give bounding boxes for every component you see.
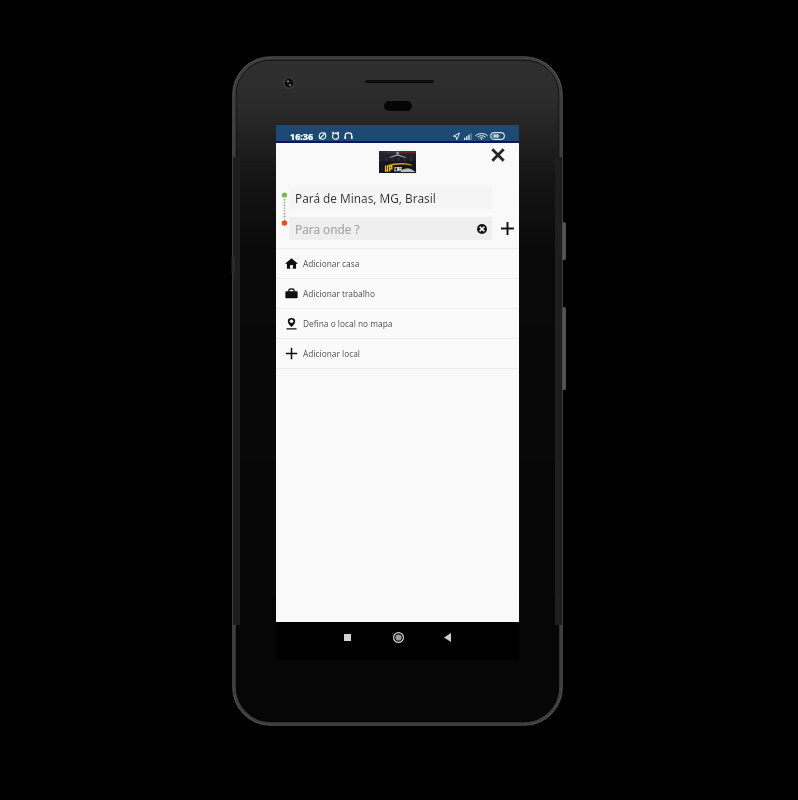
button[interactable]: Defina o local no mapa — [276, 309, 519, 338]
staticText: Para onde ? — [295, 221, 360, 237]
button[interactable]: Adicionar local — [276, 339, 519, 368]
button[interactable]: Voltar — [434, 624, 460, 650]
button[interactable]: Adicionar casa — [276, 249, 519, 278]
staticText: Pará de Minas, MG, Brasil — [295, 190, 436, 206]
button[interactable]: Pará de Minas, MG, Brasil — [289, 186, 492, 209]
button[interactable]: Início — [385, 624, 411, 650]
button[interactable]: Adicionar trabalho — [276, 279, 519, 308]
button[interactable]: Para onde ? — [289, 217, 492, 240]
staticText: Adicionar casa — [303, 258, 360, 269]
button[interactable]: Fechar — [485, 142, 511, 168]
staticText: Defina o local no mapa — [303, 318, 393, 329]
button[interactable]: Recentes — [334, 624, 360, 650]
button[interactable]: Limpar — [474, 221, 490, 237]
staticText: 16:36 — [290, 130, 314, 142]
staticText: Adicionar local — [303, 348, 360, 359]
staticText: Adicionar trabalho — [303, 288, 376, 299]
button[interactable]: Adicionar parada — [494, 215, 521, 242]
